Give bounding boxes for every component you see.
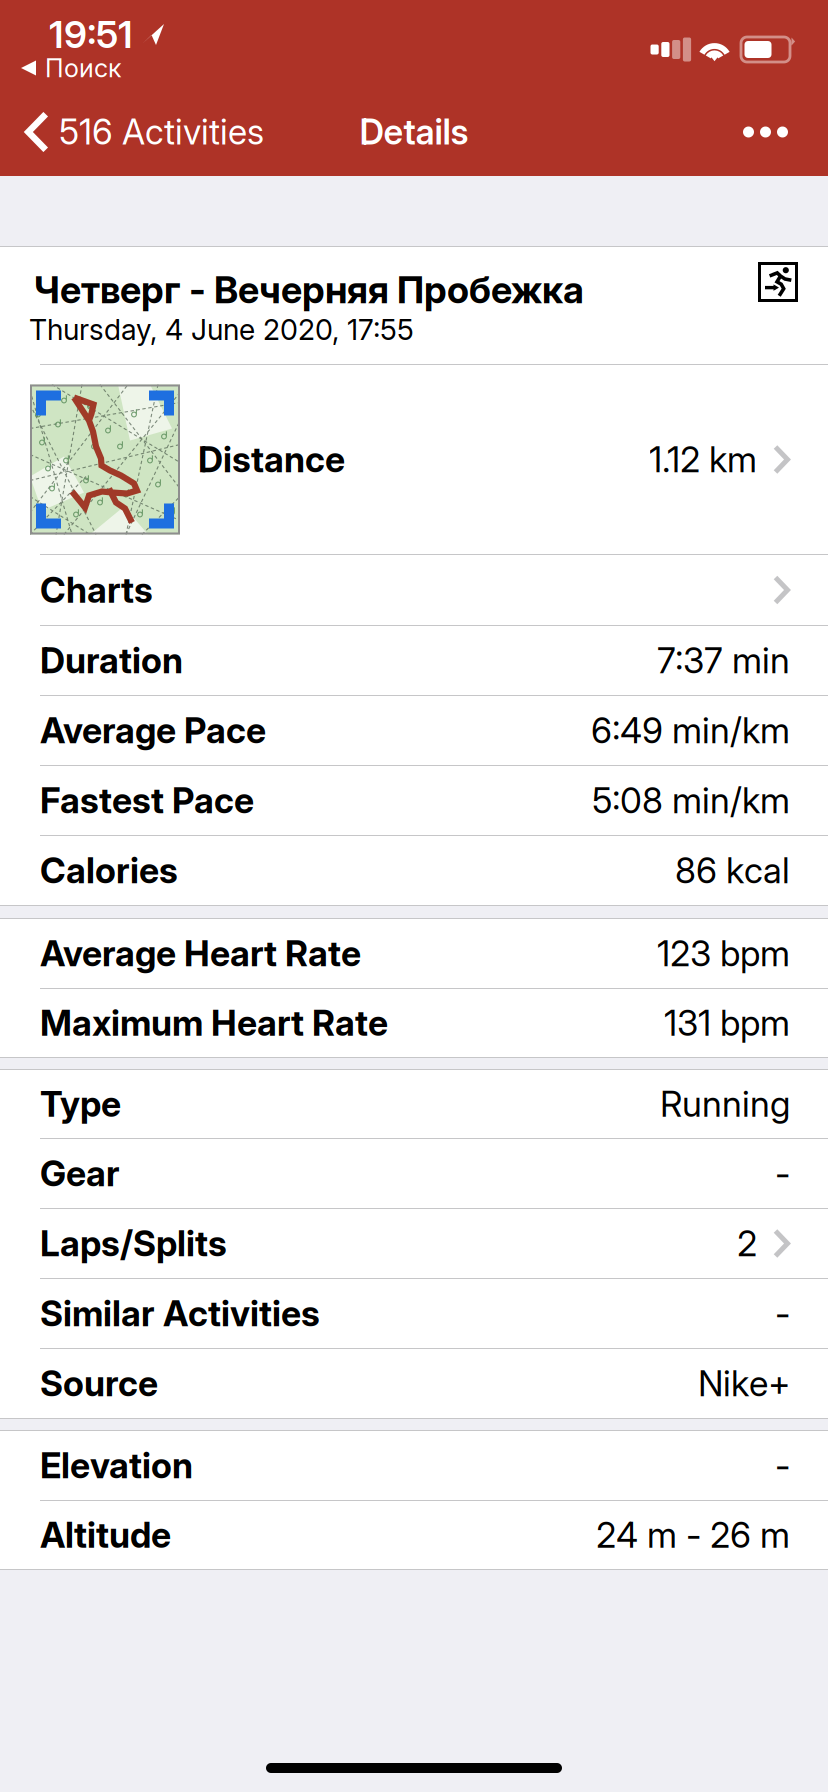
button[interactable]: Duration <box>0 626 828 695</box>
staticText: 2 <box>737 1222 757 1265</box>
staticText: 131 bpm <box>664 1002 790 1044</box>
button[interactable]: 516 Activities <box>0 102 264 162</box>
staticText: 123 bpm <box>657 932 790 975</box>
button[interactable]: Source <box>0 1349 828 1418</box>
button[interactable]: Distance <box>0 365 828 554</box>
staticText: Source <box>40 1362 158 1405</box>
button[interactable]: Average Heart Rate <box>0 919 828 988</box>
staticText: Similar Activities <box>40 1292 320 1335</box>
staticText: Thursday, 4 June 2020, 17:55 <box>29 312 414 347</box>
staticText: Nike+ <box>698 1362 790 1405</box>
button[interactable]: Gear <box>0 1139 828 1208</box>
button[interactable]: Maximum Heart Rate <box>0 989 828 1057</box>
staticText: Average Heart Rate <box>40 932 361 975</box>
staticText: Average Pace <box>40 709 266 752</box>
staticText: 86 kcal <box>675 849 790 892</box>
button[interactable]: More options <box>743 102 828 162</box>
staticText: Gear <box>40 1152 120 1195</box>
staticText: 516 Activities <box>59 111 264 153</box>
staticText: 24 m - 26 m <box>596 1514 790 1556</box>
staticText: Поиск <box>45 53 121 83</box>
staticText: 6:49 min/km <box>591 709 790 752</box>
staticText: Maximum Heart Rate <box>40 1002 388 1044</box>
staticText: Laps/Splits <box>40 1222 227 1265</box>
staticText: Altitude <box>40 1514 171 1556</box>
staticText: - <box>775 1152 790 1195</box>
staticText: Distance <box>198 438 345 481</box>
button[interactable]: Поиск <box>0 52 121 84</box>
staticText: Charts <box>40 569 153 611</box>
staticText: Type <box>40 1083 121 1125</box>
staticText: Fastest Pace <box>40 779 254 822</box>
staticText: Calories <box>40 849 178 892</box>
staticText: 7:37 min <box>657 639 790 682</box>
button[interactable]: Laps/Splits <box>0 1209 828 1278</box>
staticText: - <box>775 1292 790 1335</box>
button[interactable]: Similar Activities <box>0 1279 828 1348</box>
staticText: - <box>775 1444 790 1487</box>
button[interactable]: Type <box>0 1070 828 1138</box>
button[interactable]: Average Pace <box>0 696 828 765</box>
button[interactable]: Charts <box>0 555 828 625</box>
staticText: 1.12 km <box>649 438 757 481</box>
staticText: Четверг - Вечерняя Пробежка <box>34 267 584 312</box>
button[interactable]: Calories <box>0 836 828 905</box>
staticText: 5:08 min/km <box>592 779 790 822</box>
button[interactable]: Fastest Pace <box>0 766 828 835</box>
staticText: Details <box>359 111 468 153</box>
staticText: 19:51 <box>49 12 133 57</box>
staticText: Running <box>660 1083 790 1125</box>
button[interactable]: Elevation <box>0 1431 828 1500</box>
staticText: Elevation <box>40 1444 193 1487</box>
button[interactable]: Altitude <box>0 1501 828 1569</box>
staticText: Duration <box>40 639 183 682</box>
